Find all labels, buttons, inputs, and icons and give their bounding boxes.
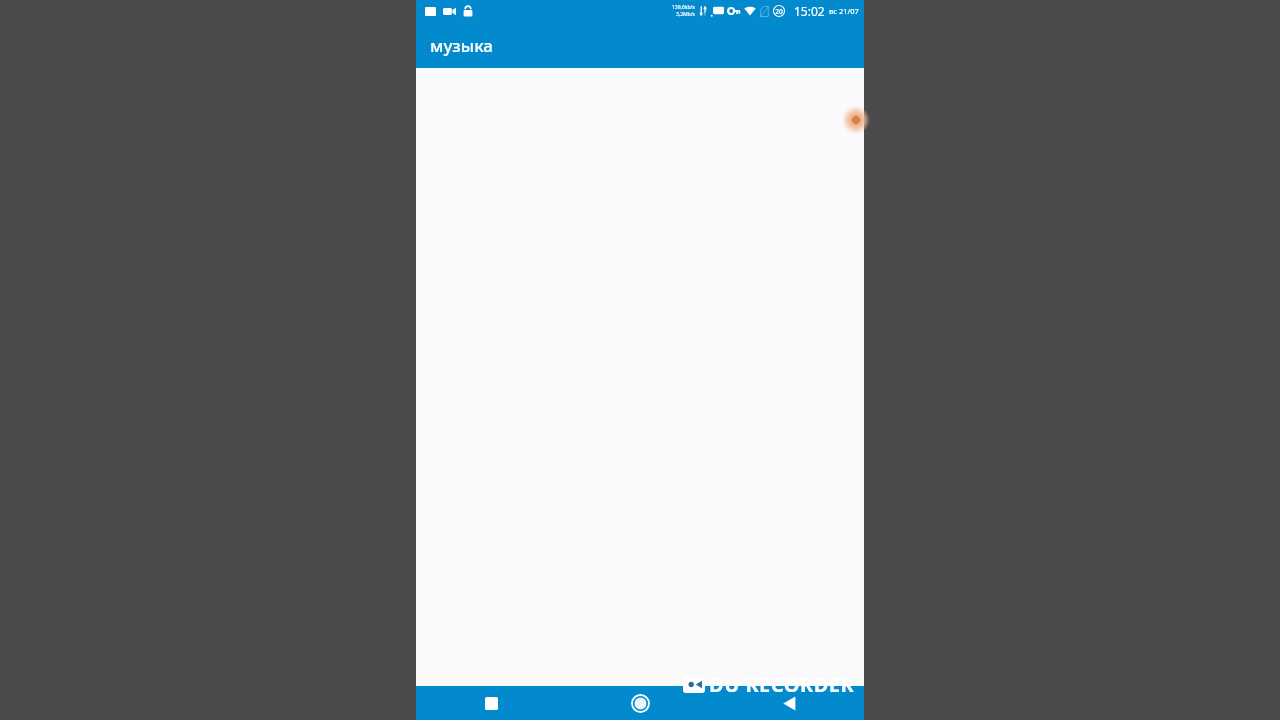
staticText: DU RECORDER xyxy=(709,671,855,698)
button[interactable]: Recent apps xyxy=(416,686,566,720)
button[interactable]: Home xyxy=(566,686,715,720)
staticText: вс 21/07 xyxy=(829,6,859,16)
staticText: 15:02 xyxy=(794,3,825,19)
button[interactable]: Back xyxy=(715,686,864,720)
staticText: 20 xyxy=(775,7,783,16)
staticText: 139,6kb/s xyxy=(672,4,695,11)
button[interactable]: Floating recorder button xyxy=(842,106,870,134)
staticText: 3,2Mb/s xyxy=(676,11,695,18)
staticText: музыка xyxy=(430,34,493,57)
